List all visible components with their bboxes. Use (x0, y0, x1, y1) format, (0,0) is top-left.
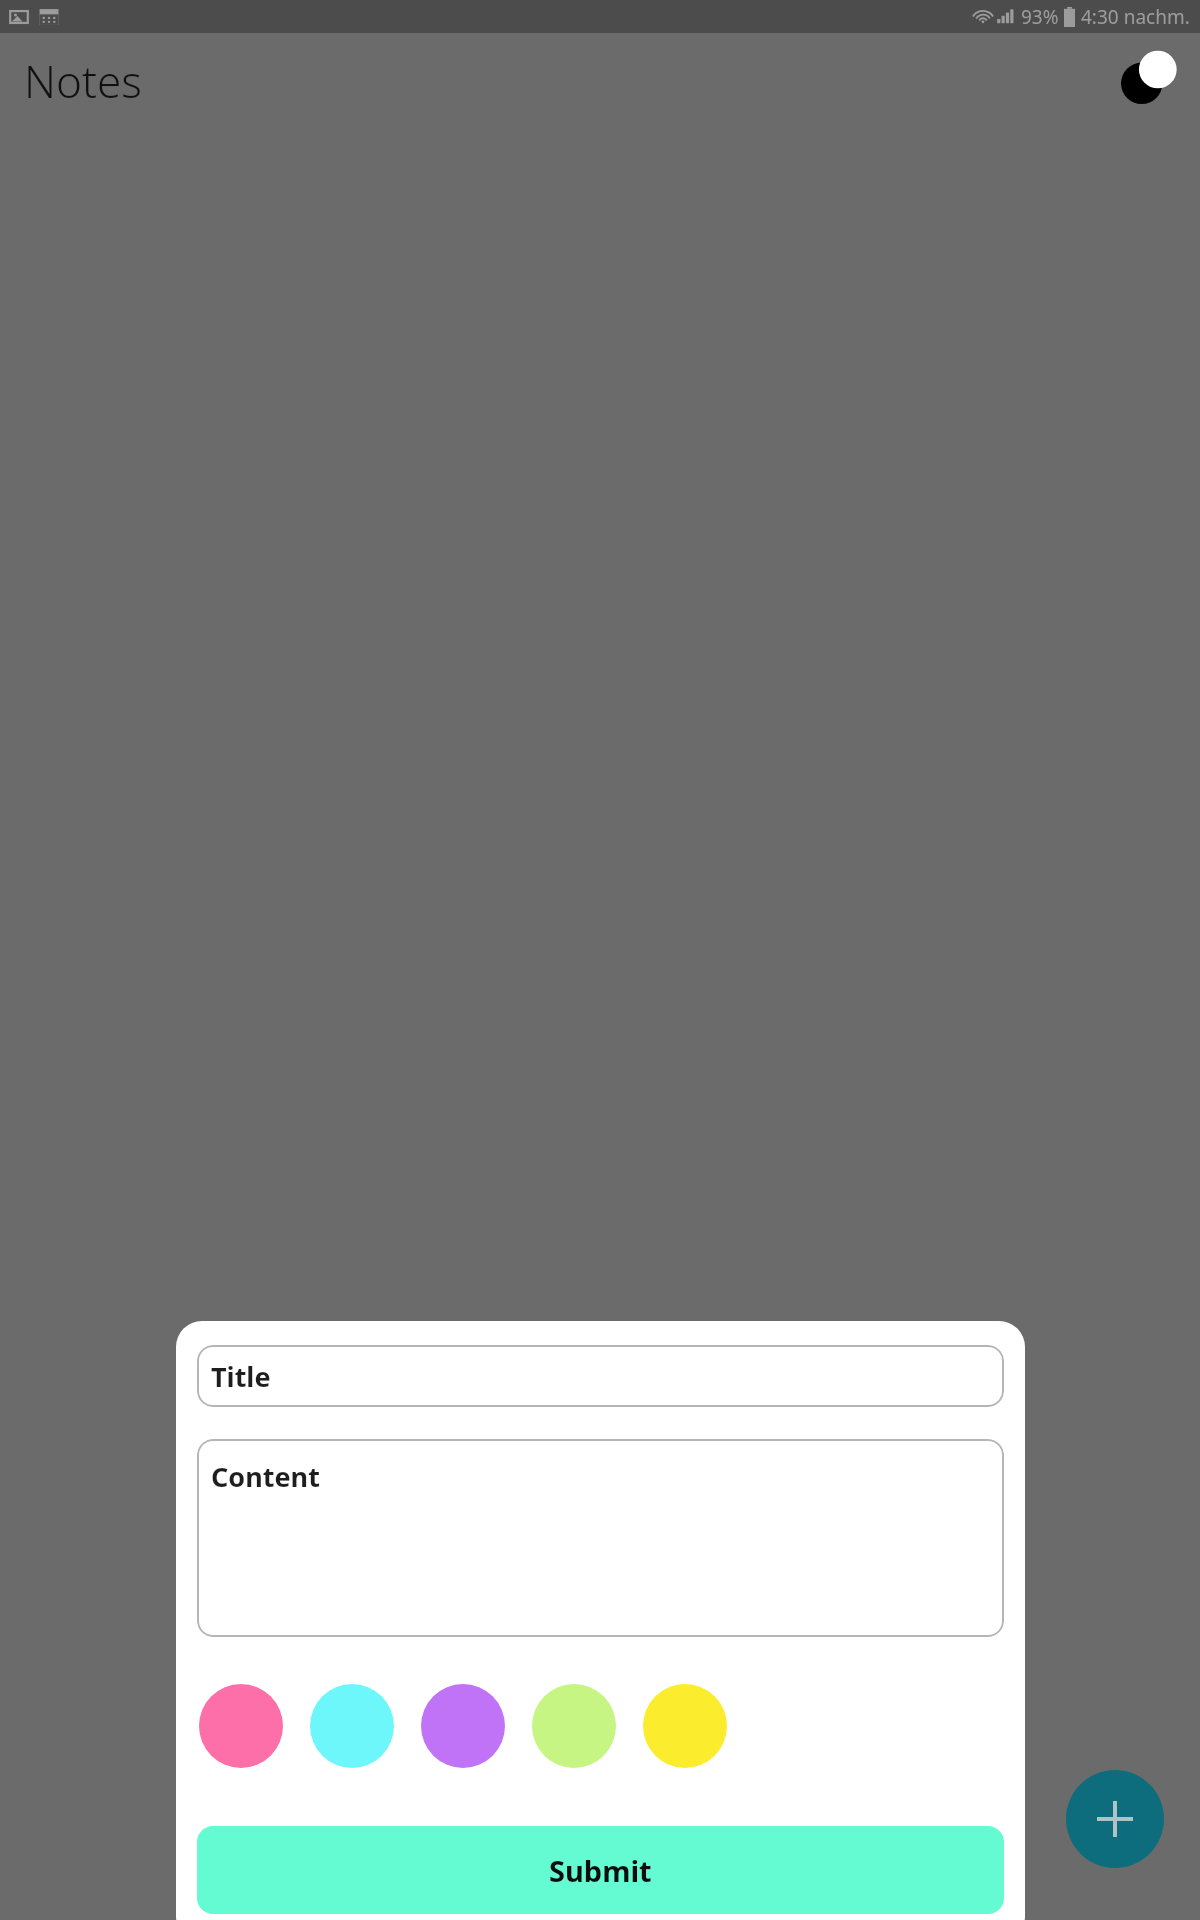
staticText: 4:30 nachm. (1081, 4, 1190, 30)
button[interactable]: Colour 3 (421, 1684, 505, 1768)
button[interactable]: Content (197, 1439, 1004, 1637)
button[interactable]: Colour 1 (199, 1684, 283, 1768)
staticText: Content (211, 1458, 320, 1495)
button[interactable]: Toggle dark mode (1106, 43, 1182, 119)
button[interactable]: Add note (1066, 1770, 1164, 1868)
staticText: Notes (24, 51, 142, 111)
button[interactable]: Title (197, 1345, 1004, 1407)
staticText: Title (211, 1358, 271, 1395)
staticText: Submit (549, 1851, 652, 1890)
button[interactable]: Submit (197, 1826, 1004, 1914)
button[interactable]: Colour 4 (532, 1684, 616, 1768)
staticText: 93% (1021, 4, 1059, 30)
button[interactable]: Colour 5 (643, 1684, 727, 1768)
button[interactable]: Notes (24, 51, 142, 111)
button[interactable]: Colour 2 (310, 1684, 394, 1768)
